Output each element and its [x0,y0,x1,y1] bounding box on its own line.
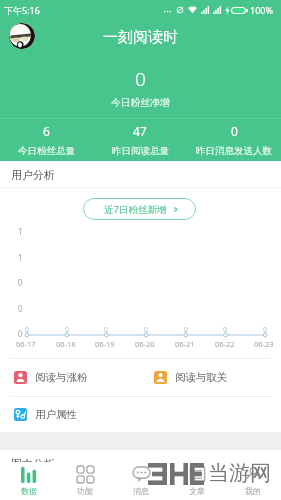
staticText: 1 [18,252,23,263]
button[interactable]: 6 [0,119,93,161]
button[interactable]: 我的 [225,462,281,500]
button[interactable]: 消息 [113,462,169,500]
staticText: 我的 [245,486,261,496]
staticText: 06-21 [175,339,195,349]
staticText: 0 [184,325,189,335]
button[interactable]: Profile avatar [9,23,35,49]
button[interactable]: 功能 [57,462,113,500]
button[interactable]: 数据 [0,462,57,500]
staticText: 0 [104,325,109,335]
staticText: 昨日消息发送人数 [196,145,272,157]
staticText: 消息 [133,486,149,496]
staticText: 47 [133,123,147,139]
button[interactable]: 47 [93,119,187,161]
staticText: 0 [231,123,238,139]
staticText: 06-22 [215,339,235,349]
staticText: 图文分析 [11,457,55,471]
staticText: 今日粉丝净增 [111,97,170,109]
staticText: 用户分析 [11,168,55,182]
staticText: 文章 [189,486,205,496]
button[interactable]: 0 [187,119,281,161]
staticText: 阅读与取关 [175,371,228,384]
staticText: 数据 [21,486,37,496]
staticText: 当游网 [208,460,271,486]
staticText: 0 [223,325,228,335]
staticText: 06-23 [254,339,274,349]
button[interactable]: 文章 [169,462,225,500]
button[interactable]: 近7日粉丝新增 [83,198,196,220]
staticText: 0 [18,303,23,314]
staticText: 06-17 [16,339,36,349]
button[interactable]: 阅读与涨粉 [0,359,140,396]
staticText: 0 [18,277,23,288]
staticText: 0 [65,325,70,335]
staticText: 0 [144,325,149,335]
staticText: 用户属性 [35,408,77,421]
staticText: 功能 [77,486,93,496]
staticText: 06-20 [135,339,155,349]
staticText: 0 [25,325,30,335]
staticText: 0 [263,325,268,335]
staticText: 今日粉丝总量 [18,145,75,157]
button[interactable]: 用户属性 [0,397,140,432]
staticText: 06-19 [95,339,115,349]
staticText: 昨日阅读总量 [112,145,169,157]
staticText: 6 [43,123,50,139]
staticText: 一刻阅读时 [103,28,178,47]
staticText: 0 [18,328,23,339]
staticText: 06-18 [56,339,76,349]
button[interactable]: 阅读与取关 [140,359,281,396]
staticText: 1 [18,226,23,237]
staticText: 100% [250,4,273,16]
staticText: 阅读与涨粉 [35,371,88,384]
staticText: 近7日粉丝新增 [104,203,167,216]
staticText: 0 [135,66,146,92]
staticText: 下午5:16 [4,4,40,16]
